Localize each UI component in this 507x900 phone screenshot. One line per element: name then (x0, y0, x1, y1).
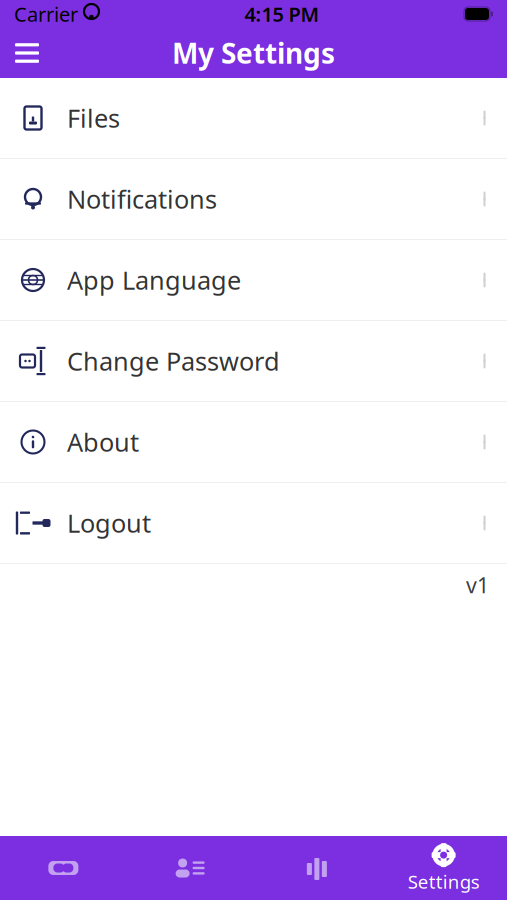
staticText: Carrier (14, 1, 78, 27)
button[interactable]: Notifications (0, 159, 507, 240)
staticText: App Language (67, 263, 241, 297)
button[interactable]: Contacts (127, 836, 254, 900)
button[interactable]: Change Password (0, 321, 507, 402)
button[interactable]: Reports (253, 836, 380, 900)
staticText: About (67, 425, 139, 459)
staticText: Settings (408, 869, 480, 894)
staticText: Files (67, 101, 120, 135)
button[interactable]: Settings (380, 836, 507, 900)
button[interactable]: Menu (0, 28, 54, 78)
button[interactable]: Deals (0, 836, 127, 900)
button[interactable]: About (0, 402, 507, 483)
staticText: v1 (466, 571, 489, 599)
staticText: Change Password (67, 344, 280, 378)
button[interactable]: Logout (0, 483, 507, 564)
staticText: My Settings (172, 34, 335, 72)
staticText: 4:15 PM (244, 1, 319, 27)
staticText: Logout (67, 506, 151, 540)
button[interactable]: Files (0, 78, 507, 159)
staticText: Notifications (67, 182, 217, 216)
button[interactable]: App Language (0, 240, 507, 321)
